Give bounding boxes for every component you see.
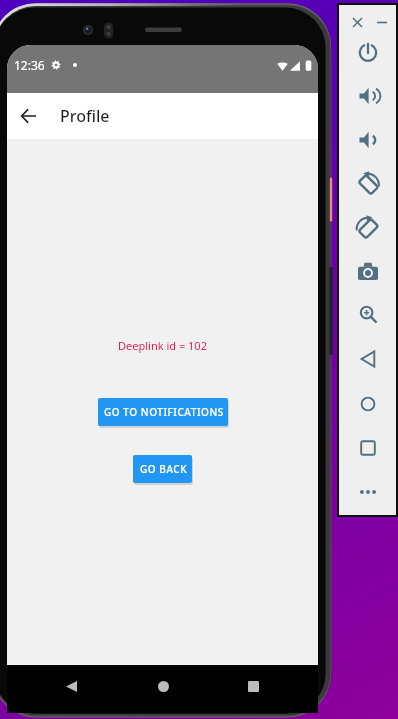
button[interactable]: Minimize — [372, 12, 392, 32]
button[interactable]: Close — [347, 12, 367, 32]
staticText: 12:36 — [14, 57, 45, 73]
staticText: GO BACK — [140, 462, 188, 476]
staticText: Deeplink id = 102 — [118, 338, 207, 353]
button[interactable]: Home — [148, 671, 178, 701]
button[interactable]: Rotate left — [355, 171, 381, 197]
button[interactable]: Back — [56, 671, 86, 701]
button[interactable]: Navigate up — [11, 99, 45, 133]
button[interactable]: Back — [355, 346, 381, 372]
button[interactable]: Take screenshot — [355, 258, 381, 284]
button[interactable]: More — [355, 479, 381, 505]
button[interactable]: Zoom in — [355, 301, 381, 327]
button[interactable]: Overview — [355, 435, 381, 461]
button[interactable]: Volume down — [355, 127, 381, 153]
button[interactable]: GO BACK — [133, 455, 192, 483]
staticText: Profile — [60, 105, 110, 127]
button[interactable]: Rotate right — [355, 215, 381, 241]
button[interactable]: GO TO NOTIFICATIONS — [98, 398, 228, 426]
staticText: GO TO NOTIFICATIONS — [104, 405, 224, 419]
button[interactable]: Recent apps — [238, 671, 268, 701]
button[interactable]: Volume up — [355, 83, 381, 109]
button[interactable]: Home — [355, 391, 381, 417]
button[interactable]: Power — [355, 39, 381, 65]
